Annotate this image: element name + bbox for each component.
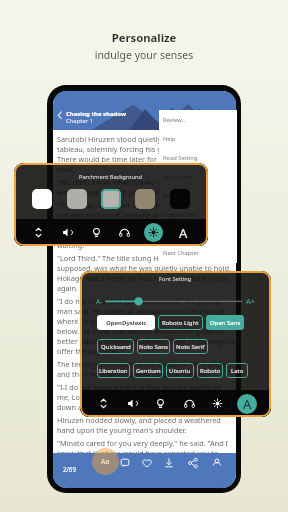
button[interactable]: Liberation xyxy=(97,363,130,378)
staticText: Read Setting xyxy=(163,154,198,162)
staticText: Liberation xyxy=(99,367,128,375)
button[interactable]: Next Chapter xyxy=(159,243,237,262)
staticText: Chapter 1 xyxy=(66,117,94,125)
button[interactable]: Font xyxy=(173,223,193,243)
staticText: Personalize xyxy=(0,30,288,45)
staticText: Chapter List xyxy=(163,211,196,219)
button[interactable]: Help xyxy=(159,129,237,148)
staticText: "Minato cared for you very deeply," he s… xyxy=(57,438,235,468)
staticText: A xyxy=(179,224,188,242)
staticText: Bookmark xyxy=(163,192,192,200)
button[interactable]: Volume xyxy=(123,394,142,413)
button[interactable]: Noto Serif xyxy=(173,339,208,354)
button[interactable]: Quicksand xyxy=(97,339,134,354)
staticText: Font Setting xyxy=(159,275,192,283)
button[interactable]: Profile xyxy=(209,455,225,471)
staticText: "We don't know what it is we are asking … xyxy=(57,177,235,197)
button[interactable]: Tips xyxy=(151,394,170,413)
button[interactable]: Gentium xyxy=(133,363,163,378)
staticText: Prev Chapter xyxy=(163,230,199,238)
staticText: Help xyxy=(163,135,176,143)
staticText: Auto Scroll xyxy=(163,173,193,181)
button[interactable]: Download xyxy=(161,455,177,471)
button[interactable]: Share xyxy=(185,455,201,471)
button[interactable]: Comments xyxy=(117,455,133,471)
button[interactable]: Volume xyxy=(58,223,77,242)
button[interactable]: Ubuntu xyxy=(166,363,194,378)
staticText: 2/69 xyxy=(63,465,76,473)
button[interactable]: Audio xyxy=(115,223,134,242)
staticText: Noto Serif xyxy=(176,343,205,351)
button[interactable]: Prev Chapter xyxy=(159,224,237,243)
button[interactable]: Line spacing xyxy=(29,223,48,242)
button[interactable]: Brightness xyxy=(208,394,227,413)
button[interactable]: Font xyxy=(237,394,257,414)
button[interactable]: Lato xyxy=(226,363,248,378)
staticText: A+ xyxy=(246,296,256,306)
staticText: Roboto Light xyxy=(162,319,199,327)
staticText: Ubuntu xyxy=(169,367,191,375)
button[interactable]: Back xyxy=(53,109,67,123)
button[interactable]: Roboto xyxy=(197,363,223,378)
button[interactable]: Chapter List xyxy=(159,205,237,224)
button[interactable]: Background colour xyxy=(170,189,190,209)
staticText: Parchment Background xyxy=(79,173,143,181)
staticText: Quicksand xyxy=(101,343,131,351)
button[interactable]: Auto Scroll xyxy=(159,167,237,186)
staticText: Hiruzen nodded slowly, and placed a weat… xyxy=(57,415,235,435)
button[interactable]: Audio xyxy=(180,394,199,413)
staticText: Review... xyxy=(163,116,187,124)
staticText: Next Chapter xyxy=(163,249,200,257)
staticText: "There was one other man who would be he… xyxy=(57,200,235,250)
staticText: "I-I do not know what it is that you are… xyxy=(57,382,235,412)
button[interactable]: Text settings xyxy=(92,448,119,475)
button[interactable]: Background colour xyxy=(135,189,155,209)
button[interactable]: Line spacing xyxy=(94,394,113,413)
button[interactable]: Noto Sans xyxy=(137,339,170,354)
staticText: Gentium xyxy=(136,367,161,375)
staticText: Aa xyxy=(101,457,110,467)
staticText: The teenager considered the question for… xyxy=(57,359,235,379)
button[interactable]: Background colour xyxy=(101,189,121,209)
button[interactable]: Brightness xyxy=(144,223,163,242)
button[interactable]: Open Sans xyxy=(206,315,244,330)
button[interactable]: Background colour xyxy=(67,189,87,209)
staticText: Lato xyxy=(231,367,244,375)
staticText: OpenDyslexic xyxy=(106,319,147,327)
staticText: A- xyxy=(96,297,103,306)
staticText: "I do not think that you understand," th… xyxy=(57,296,235,356)
staticText: Chasing the shadow xyxy=(66,110,127,118)
staticText: A xyxy=(243,395,252,413)
button[interactable]: Tips xyxy=(87,223,106,242)
staticText: Roboto xyxy=(200,367,221,375)
button[interactable]: Review... xyxy=(159,110,237,129)
button[interactable]: Read Setting xyxy=(159,148,237,167)
staticText: Open Sans xyxy=(210,319,241,327)
staticText: Noto Sans xyxy=(139,343,168,351)
staticText: "Lord Third." The title stung Hiruzen mo… xyxy=(57,253,235,293)
button[interactable]: Roboto Light xyxy=(158,315,203,330)
button[interactable]: Background colour xyxy=(32,189,52,209)
button[interactable]: OpenDyslexic xyxy=(97,315,155,330)
button[interactable]: Bookmark xyxy=(159,186,237,205)
staticText: Sarutobi Hiruzen stood quietly before th… xyxy=(57,134,235,174)
button[interactable]: Favourite xyxy=(139,455,155,471)
staticText: indulge your senses xyxy=(0,48,288,62)
